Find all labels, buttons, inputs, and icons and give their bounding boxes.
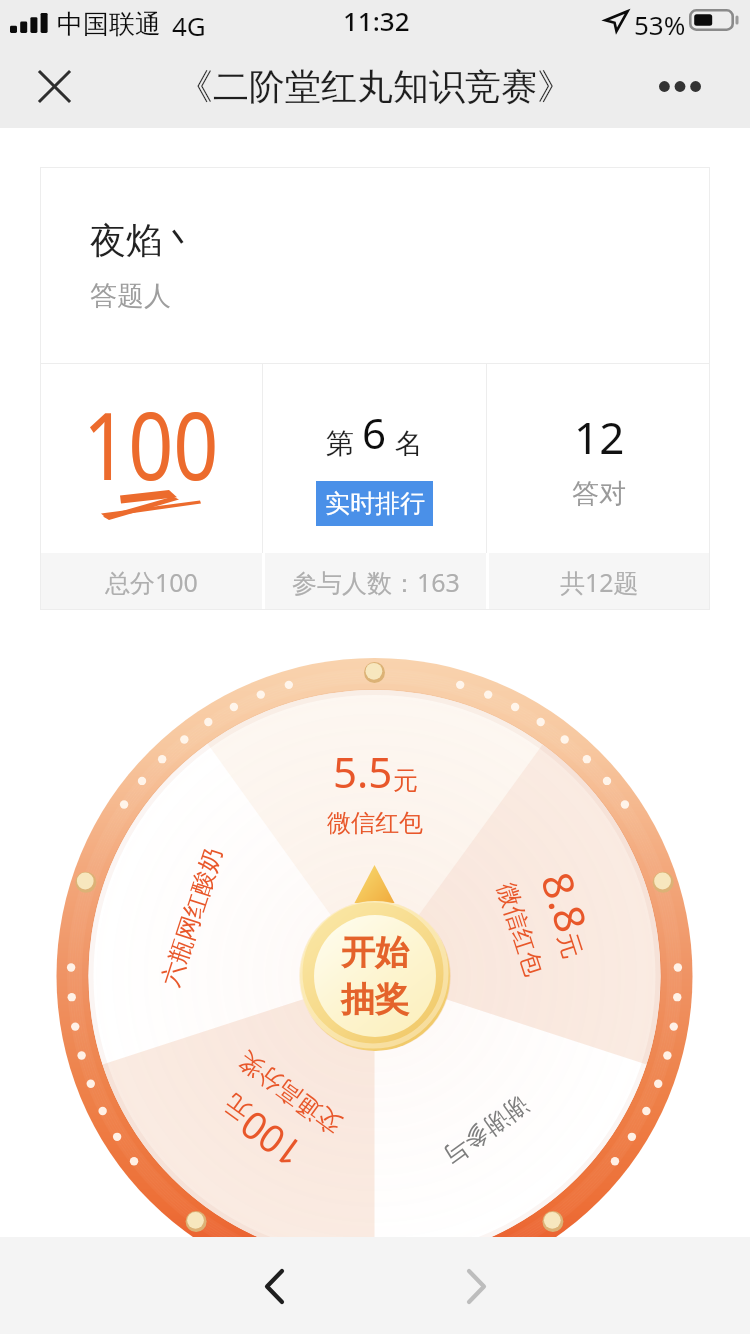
staticText: 元	[218, 1087, 257, 1127]
staticText: 微信红包	[327, 808, 423, 838]
staticText: 53%	[634, 7, 686, 42]
staticText: 4G	[172, 8, 206, 43]
staticText: 8.8	[529, 865, 602, 940]
staticText: 六瓶网红酸奶	[155, 844, 228, 990]
staticText: 第	[326, 426, 354, 461]
staticText: 抽奖	[341, 978, 409, 1021]
staticText: 谢谢参与	[438, 1090, 534, 1170]
staticText: 总分100	[105, 565, 198, 599]
staticText: 名	[395, 426, 423, 461]
staticText: 5.5	[333, 743, 393, 800]
staticText: 100	[229, 1099, 313, 1180]
button[interactable]: 实时排行	[316, 481, 433, 526]
staticText: 夜焰丶	[90, 218, 198, 263]
staticText: 实时排行	[325, 488, 425, 519]
button[interactable]: Back	[244, 1256, 304, 1316]
staticText: 12	[574, 407, 625, 467]
staticText: 参与人数：163	[292, 565, 460, 599]
staticText: 中国联通	[57, 8, 161, 41]
button[interactable]: Close	[22, 54, 86, 118]
staticText: 开始	[341, 931, 409, 974]
staticText: 微信红包	[491, 879, 549, 980]
button[interactable]: More options	[648, 54, 712, 118]
staticText: 交通高分奖	[232, 1045, 347, 1140]
staticText: 100	[83, 380, 219, 508]
staticText: 元	[551, 929, 588, 962]
staticText: 答对	[572, 477, 626, 511]
staticText: 11:32	[343, 3, 410, 38]
staticText: 元	[393, 765, 418, 796]
staticText: 答题人	[90, 279, 171, 313]
staticText: 共12题	[560, 565, 639, 599]
staticText: 《二阶堂红丸知识竞赛》	[177, 64, 573, 109]
button[interactable]: 开始抽奖	[299, 901, 451, 1051]
button[interactable]: Forward	[446, 1256, 506, 1316]
staticText: 6	[362, 404, 387, 461]
